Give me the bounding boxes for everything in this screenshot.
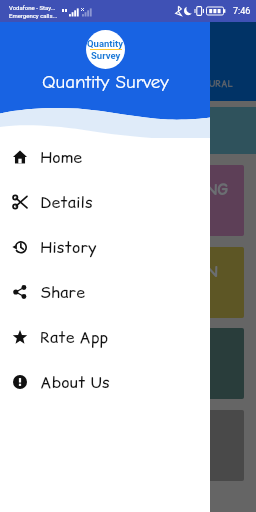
staticText: Share <box>40 281 85 303</box>
button[interactable]: Details <box>0 179 210 224</box>
button[interactable] <box>12 410 244 481</box>
staticText: Quantity <box>87 38 124 49</box>
staticText: Vodafone - Stay... <box>9 4 56 11</box>
staticText: Details <box>40 191 93 213</box>
button[interactable]: FOUNDATION <box>12 247 244 318</box>
staticText: Rate App <box>40 326 109 348</box>
button[interactable]: Rate App <box>0 314 210 359</box>
staticText: 7:46 <box>233 6 251 17</box>
staticText: FOUNDATION <box>109 261 218 282</box>
staticText: History <box>40 236 97 258</box>
button[interactable]: Home <box>0 134 210 179</box>
button[interactable]: Share <box>0 269 210 314</box>
button[interactable]: PLUMBING <box>12 165 244 236</box>
button[interactable]: About Us <box>0 359 210 404</box>
button[interactable] <box>12 328 244 399</box>
staticText: Survey <box>91 50 121 61</box>
staticText: PLUMBING <box>147 179 228 200</box>
staticText: STRUCTURAL <box>172 78 233 91</box>
staticText: Home <box>40 146 82 168</box>
staticText: Emergency calls... <box>9 12 58 19</box>
button[interactable]: History <box>0 224 210 269</box>
staticText: About Us <box>40 371 110 393</box>
staticText: Quantity Survey <box>42 71 169 93</box>
